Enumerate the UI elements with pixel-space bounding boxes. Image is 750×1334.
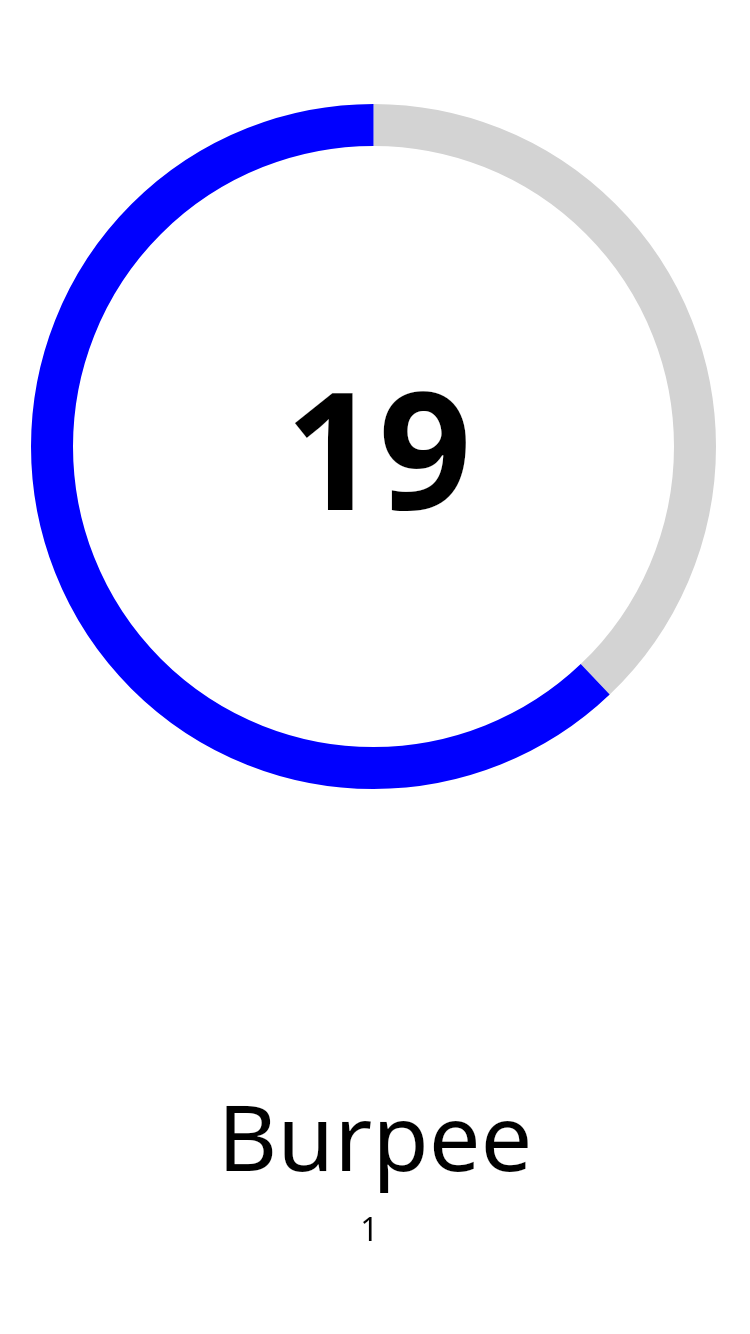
- button[interactable]: Burpee: [0, 1073, 750, 1334]
- button[interactable]: Burpee rep progress, 19 reps: [31, 104, 716, 789]
- staticText: 19: [285, 336, 472, 558]
- staticText: Burpee: [217, 1073, 533, 1198]
- staticText: 1: [360, 1206, 379, 1251]
